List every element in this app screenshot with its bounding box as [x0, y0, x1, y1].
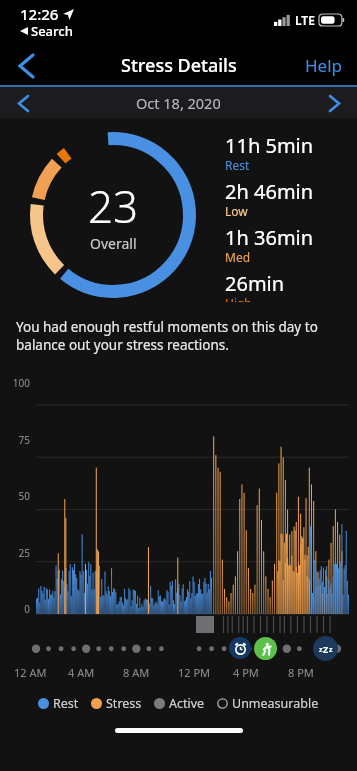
staticText: Rest — [225, 157, 250, 173]
staticText: Stress — [106, 695, 142, 712]
staticText: 100 — [6, 376, 30, 390]
staticText: You had enough restful moments on this d… — [16, 318, 341, 354]
staticText: 75 — [6, 433, 30, 447]
button[interactable]: Rest — [38, 695, 79, 712]
staticText: 23 — [88, 176, 139, 236]
button[interactable]: Activity — [254, 637, 277, 660]
staticText: 50 — [6, 489, 30, 503]
staticText: Stress Details — [121, 53, 237, 78]
staticText: Unmeasurable — [232, 695, 319, 712]
button[interactable]: Alarm — [229, 637, 251, 659]
staticText: z — [329, 645, 333, 655]
staticText: 2h 46min — [225, 178, 314, 205]
staticText: 1h 36min — [225, 224, 314, 251]
staticText: Med — [225, 249, 251, 265]
staticText: Z — [323, 643, 329, 655]
staticText: Search — [31, 22, 73, 40]
staticText: Active — [169, 695, 205, 712]
staticText: 4 AM — [68, 665, 95, 680]
button[interactable]: Stress — [91, 695, 142, 712]
staticText: 0 — [6, 602, 30, 616]
staticText: Low — [225, 203, 248, 219]
staticText: 25 — [6, 546, 30, 560]
button[interactable]: Active — [154, 695, 205, 712]
staticText: 4 PM — [233, 665, 259, 680]
button[interactable]: Help — [305, 54, 343, 77]
staticText: 8 PM — [288, 665, 314, 680]
staticText: High — [225, 295, 252, 302]
staticText: 11h 5min — [225, 132, 314, 159]
button[interactable]: Previous day — [8, 88, 38, 118]
button[interactable]: Back — [6, 46, 46, 86]
staticText: Overall — [90, 234, 137, 253]
staticText: z — [319, 645, 323, 655]
button[interactable]: Next day — [319, 88, 349, 118]
staticText: LTE — [295, 12, 315, 28]
staticText: Rest — [53, 695, 79, 712]
staticText: 12 AM — [14, 665, 47, 680]
staticText: 8 AM — [123, 665, 150, 680]
button[interactable]: Sleep — [313, 636, 338, 661]
staticText: 12 PM — [178, 665, 211, 680]
staticText: Oct 18, 2020 — [136, 93, 221, 113]
staticText: 26min — [225, 270, 285, 297]
staticText: Help — [305, 54, 343, 77]
button[interactable]: Unmeasurable — [217, 695, 319, 712]
staticText: 12:26 — [20, 4, 59, 24]
